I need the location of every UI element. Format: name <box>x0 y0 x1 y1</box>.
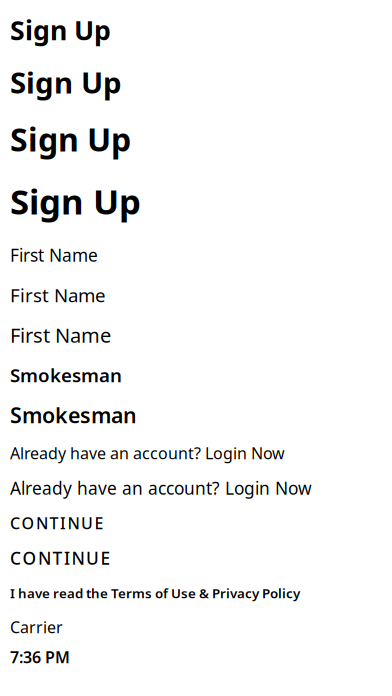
staticText: 7:36 PM <box>10 646 70 668</box>
staticText: Sign Up <box>10 62 122 101</box>
staticText: Already have an account? Login Now <box>10 476 312 499</box>
staticText: CONTINUE <box>10 546 110 569</box>
staticText: Sign Up <box>10 12 111 48</box>
staticText: Smokesman <box>10 363 122 387</box>
staticText: I have read the Terms of Use & Privacy P… <box>10 584 300 602</box>
staticText: Carrier <box>10 616 63 638</box>
staticText: Sign Up <box>10 178 141 224</box>
staticText: CONTINUE <box>10 512 103 534</box>
staticText: Sign Up <box>10 118 131 160</box>
staticText: Smokesman <box>10 401 137 429</box>
staticText: First Name <box>10 243 98 266</box>
staticText: First Name <box>10 283 106 307</box>
staticText: Already have an account? Login Now <box>10 442 285 464</box>
staticText: First Name <box>10 322 111 348</box>
